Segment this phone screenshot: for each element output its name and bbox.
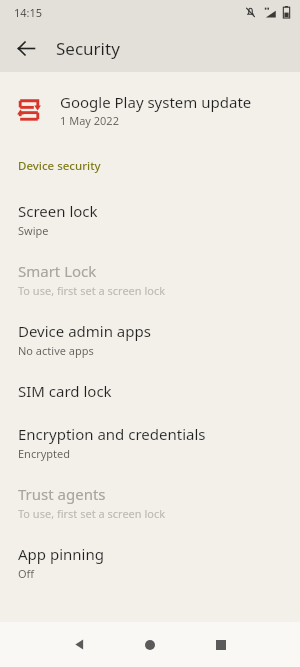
staticText: Off (18, 566, 35, 581)
button[interactable]: Back (6, 28, 46, 68)
staticText: Google Play system update (60, 92, 252, 112)
staticText: Encrypted (18, 446, 71, 461)
staticText: Smart Lock (18, 261, 97, 281)
staticText: 1 May 2022 (60, 113, 119, 128)
button[interactable]: Device admin apps (0, 310, 300, 370)
staticText: Screen lock (18, 201, 98, 221)
staticText: Encryption and credentials (18, 424, 206, 444)
button[interactable]: Screen lock (0, 190, 300, 250)
button[interactable]: SIM card lock (0, 370, 300, 413)
button[interactable]: Encryption and credentials (0, 413, 300, 473)
button[interactable]: Trust agents (0, 473, 300, 533)
button[interactable]: Home (114, 622, 185, 667)
button[interactable]: Recent apps (185, 622, 256, 667)
staticText: App pinning (18, 544, 104, 564)
staticText: Device security (18, 158, 101, 174)
staticText: No active apps (18, 343, 94, 358)
staticText: SIM card lock (18, 381, 112, 401)
staticText: 14:15 (14, 5, 43, 20)
button[interactable]: Google Play system update (0, 86, 300, 136)
staticText: Device admin apps (18, 321, 151, 341)
staticText: To use, first set a screen lock (18, 283, 166, 298)
staticText: Security (56, 37, 120, 60)
button[interactable]: App pinning (0, 533, 300, 593)
button[interactable]: Back (44, 622, 114, 667)
button[interactable]: Smart Lock (0, 250, 300, 310)
staticText: To use, first set a screen lock (18, 506, 166, 521)
staticText: Swipe (18, 223, 49, 238)
staticText: Trust agents (18, 484, 106, 504)
